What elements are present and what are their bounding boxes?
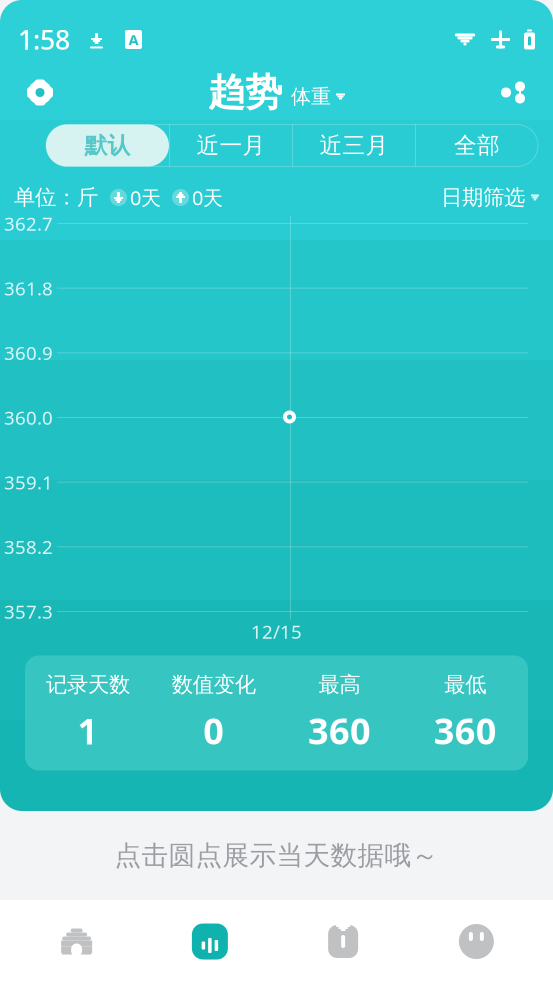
staticText: 日期筛选 (441, 184, 525, 211)
button[interactable]: 全部 (415, 124, 538, 166)
button[interactable]: Settings (19, 71, 61, 113)
staticText: 近一月 (196, 132, 265, 159)
staticText: 0天 (130, 184, 161, 211)
button[interactable]: Home (10, 924, 143, 958)
staticText: 359.1 (4, 470, 53, 495)
button[interactable]: Share (492, 71, 534, 113)
staticText: 360.9 (4, 340, 53, 365)
staticText: 361.8 (4, 276, 53, 301)
staticText: 362.7 (4, 211, 53, 236)
staticText: 360 (434, 707, 497, 754)
staticText: 近三月 (319, 132, 388, 159)
staticText: 记录天数 (46, 671, 130, 698)
staticText: 最高 (318, 671, 360, 698)
staticText: 360 (308, 707, 371, 754)
staticText: 单位：斤 (14, 184, 98, 211)
button[interactable]: 趋势 (208, 70, 345, 115)
staticText: 最低 (444, 671, 486, 698)
button[interactable]: 默认 (46, 124, 169, 166)
staticText: 358.2 (4, 534, 53, 559)
button[interactable]: Data point 12/15 (283, 410, 296, 423)
staticText: 默认 (84, 132, 130, 159)
staticText: A (128, 30, 138, 49)
staticText: 数值变化 (172, 671, 256, 698)
button[interactable]: 近一月 (169, 124, 292, 166)
button[interactable]: Records (276, 924, 410, 958)
button[interactable]: Profile (410, 924, 543, 959)
staticText: 357.3 (4, 599, 53, 624)
staticText: 1:58 (18, 22, 70, 57)
staticText: 趋势 (208, 70, 282, 115)
staticText: 点击圆点展示当天数据哦～ (114, 839, 438, 872)
staticText: 0 (203, 707, 224, 754)
staticText: 12/15 (251, 619, 302, 644)
button[interactable]: 近三月 (292, 124, 415, 166)
staticText: 360.0 (4, 405, 53, 430)
staticText: 体重 (291, 84, 331, 109)
button[interactable]: Trends (143, 923, 276, 959)
staticText: 全部 (454, 132, 500, 159)
staticText: 0天 (192, 184, 223, 211)
staticText: 1 (77, 707, 98, 754)
button[interactable]: 日期筛选 (441, 184, 539, 211)
